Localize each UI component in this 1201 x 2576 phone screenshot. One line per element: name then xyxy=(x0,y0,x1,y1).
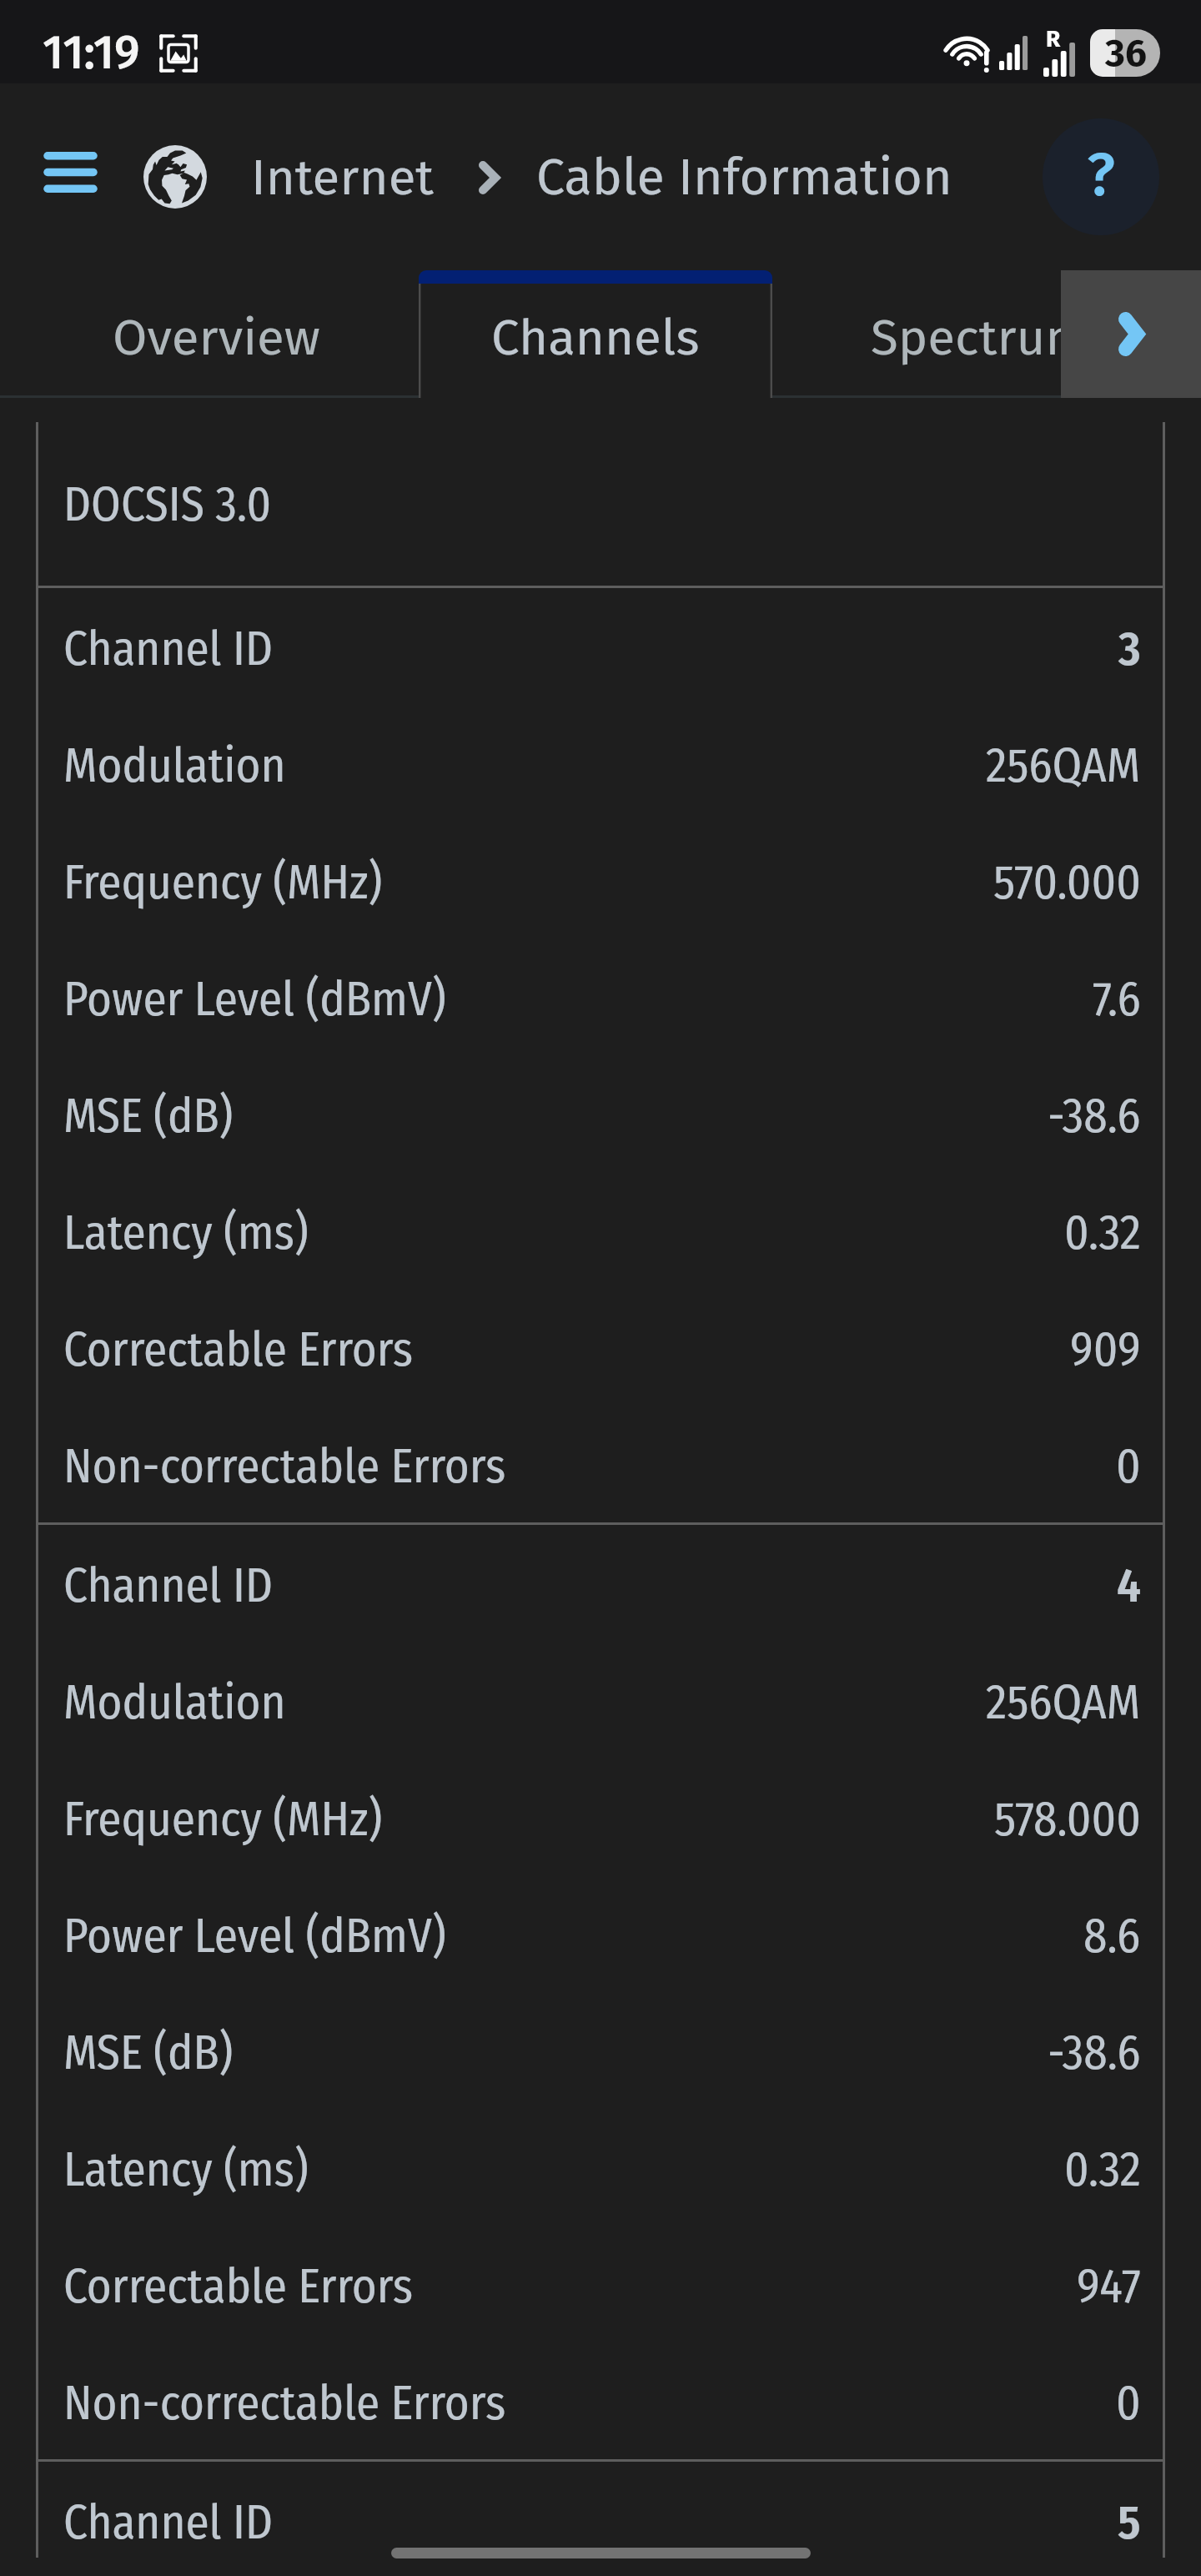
staticText: 11:19 xyxy=(43,25,140,81)
staticText: 578.000 xyxy=(994,1791,1141,1848)
staticText: Channel ID xyxy=(63,621,274,677)
staticText: 0 xyxy=(1116,2375,1141,2432)
staticText: 0 xyxy=(1116,1438,1141,1495)
staticText: 3 xyxy=(1118,621,1141,677)
staticText: 0.32 xyxy=(1064,1205,1141,1261)
staticText: Correctable Errors xyxy=(63,1321,414,1378)
staticText: Spectrum xyxy=(871,308,1088,368)
button[interactable]: Channel ID xyxy=(36,588,1165,705)
staticText: DOCSIS 3.0 xyxy=(63,476,272,533)
button[interactable]: Channels xyxy=(419,270,772,398)
staticText: Latency (ms) xyxy=(63,2141,309,2198)
staticText: Channel ID xyxy=(63,2494,274,2551)
staticText: Power Level (dBmV) xyxy=(63,971,446,1028)
staticText: 0.32 xyxy=(1064,2141,1141,2198)
button[interactable]: Frequency (MHz) xyxy=(36,1758,1165,1875)
staticText: 947 xyxy=(1077,2258,1141,2315)
staticText: 4 xyxy=(1117,1557,1141,1614)
button[interactable]: Spectrum xyxy=(772,270,1186,398)
button[interactable]: Power Level (dBmV) xyxy=(36,938,1165,1055)
staticText: R xyxy=(1046,25,1061,53)
button[interactable]: Modulation xyxy=(36,1642,1165,1758)
button[interactable]: Help xyxy=(1043,118,1159,235)
button[interactable]: Latency (ms) xyxy=(36,1172,1165,1289)
staticText: 909 xyxy=(1070,1321,1141,1378)
button[interactable]: MSE (dB) xyxy=(36,1055,1165,1172)
button[interactable]: Scroll tabs right xyxy=(1061,270,1201,398)
staticText: 7.6 xyxy=(1093,971,1141,1028)
staticText: MSE (dB) xyxy=(63,1088,234,1145)
staticText: ? xyxy=(1087,139,1115,211)
button[interactable]: Non-correctable Errors xyxy=(36,2342,1165,2459)
staticText: 36 xyxy=(1105,30,1147,76)
button[interactable]: Overview xyxy=(13,270,419,398)
button[interactable]: Open navigation menu xyxy=(12,113,128,230)
staticText: Channels xyxy=(491,308,700,368)
button[interactable]: Correctable Errors xyxy=(36,2226,1165,2342)
staticText: -38.6 xyxy=(1048,1088,1141,1145)
staticText: Non-correctable Errors xyxy=(63,2375,506,2432)
button[interactable]: MSE (dB) xyxy=(36,1992,1165,2109)
button[interactable]: Channel ID xyxy=(36,1525,1165,1642)
staticText: Non-correctable Errors xyxy=(63,1438,506,1495)
button[interactable]: Latency (ms) xyxy=(36,2109,1165,2226)
button[interactable]: Power Level (dBmV) xyxy=(36,1875,1165,1992)
staticText: Modulation xyxy=(63,737,286,794)
staticText: Cable Information xyxy=(536,147,952,208)
staticText: 5 xyxy=(1118,2494,1141,2551)
staticText: Power Level (dBmV) xyxy=(63,1908,446,1965)
button[interactable]: Frequency (MHz) xyxy=(36,822,1165,938)
button[interactable]: Correctable Errors xyxy=(36,1289,1165,1406)
staticText: Channel ID xyxy=(63,1557,274,1614)
staticText: Overview xyxy=(113,308,320,368)
staticText: Internet xyxy=(251,148,434,208)
staticText: Latency (ms) xyxy=(63,1205,309,1261)
staticText: Frequency (MHz) xyxy=(63,854,383,911)
staticText: Modulation xyxy=(63,1674,286,1731)
staticText: MSE (dB) xyxy=(63,2025,234,2081)
staticText: 570.000 xyxy=(993,854,1141,911)
button[interactable]: Channel ID xyxy=(36,2462,1165,2576)
button[interactable]: Non-correctable Errors xyxy=(36,1406,1165,1522)
button[interactable]: Modulation xyxy=(36,705,1165,822)
staticText: 256QAM xyxy=(986,1674,1141,1731)
staticText: -38.6 xyxy=(1048,2025,1141,2081)
staticText: 256QAM xyxy=(986,737,1141,794)
staticText: 8.6 xyxy=(1083,1908,1141,1965)
staticText: Correctable Errors xyxy=(63,2258,414,2315)
staticText: Frequency (MHz) xyxy=(63,1791,383,1848)
